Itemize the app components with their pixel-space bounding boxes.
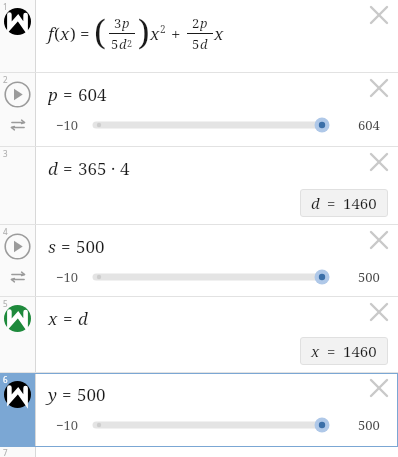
button[interactable]: Delete expression [366,299,392,325]
staticText: 1 [3,1,8,12]
button[interactable]: x [300,337,388,365]
staticText: = [327,341,336,361]
staticText: 4 [3,226,8,237]
staticText: s [48,235,56,258]
button[interactable]: 3 [0,147,398,225]
staticText: x [214,22,224,45]
staticText: 500 [77,383,106,406]
button[interactable]: 1 [0,0,398,73]
button[interactable]: Delete expression [366,375,392,401]
staticText: 1460 [343,341,377,361]
staticText: 604 [78,83,107,106]
button[interactable]: Expression style [4,305,31,332]
button[interactable]: −10 [48,112,394,138]
staticText: 1460 [343,193,377,213]
staticText: = [327,193,336,213]
staticText: p [200,14,208,32]
staticText: x [48,307,58,330]
button[interactable]: −10 [48,264,394,290]
staticText: d [48,157,58,180]
staticText: = [62,383,72,406]
button[interactable]: 2 [0,73,398,147]
staticText: 500 [358,268,380,286]
button[interactable]: Expression style [4,81,31,108]
staticText: ( [94,9,106,55]
button[interactable]: Expression style [4,8,31,35]
button[interactable]: Delete expression [366,75,392,101]
staticText: 2 [3,74,8,85]
staticText: d [78,307,88,330]
staticText: 5 [111,35,119,53]
button[interactable]: Expression style [4,233,31,260]
staticText: = [63,307,73,330]
staticText: d [200,35,208,53]
staticText: · [111,157,116,180]
staticText: x [60,22,70,45]
staticText: = [80,22,90,45]
staticText: y [48,383,57,406]
button[interactable]: Delete expression [366,227,392,253]
staticText: −10 [56,416,79,434]
staticText: 2 [192,14,200,32]
staticText: 500 [358,416,380,434]
staticText: ) [138,9,150,55]
button[interactable]: Delete expression [366,2,392,28]
staticText: −10 [56,116,79,134]
staticText: 500 [76,235,105,258]
button[interactable]: 6 [0,373,398,447]
staticText: ) [70,22,76,45]
button[interactable]: −10 [48,412,394,438]
staticText: x [311,341,320,361]
button[interactable]: 4 [0,225,398,297]
staticText: + [171,22,181,45]
staticText: 3 [3,148,8,159]
staticText: 4 [120,157,130,180]
staticText: p [122,14,130,32]
button[interactable]: Delete expression [366,149,392,175]
staticText: = [63,157,73,180]
staticText: ( [54,22,60,45]
staticText: 5 [192,35,200,53]
staticText: 7 [3,447,8,457]
staticText: = [63,83,73,106]
button[interactable]: 5 [0,297,398,373]
staticText: p [48,83,58,106]
staticText: f [48,22,54,45]
staticText: 6 [3,374,8,385]
staticText: x [150,22,160,45]
staticText: 365 [78,157,107,180]
staticText: −10 [56,268,79,286]
button[interactable]: Convert to slider [9,116,27,134]
staticText: 3 [114,14,122,32]
staticText: 2 [160,22,166,36]
staticText: 604 [358,116,380,134]
staticText: 2 [127,37,133,49]
button[interactable]: Convert to slider [9,268,27,286]
staticText: d [119,35,127,53]
button[interactable]: d [300,189,388,217]
staticText: = [61,235,71,258]
staticText: d [311,193,320,213]
button[interactable]: Expression style [4,381,31,408]
staticText: 5 [3,298,8,309]
